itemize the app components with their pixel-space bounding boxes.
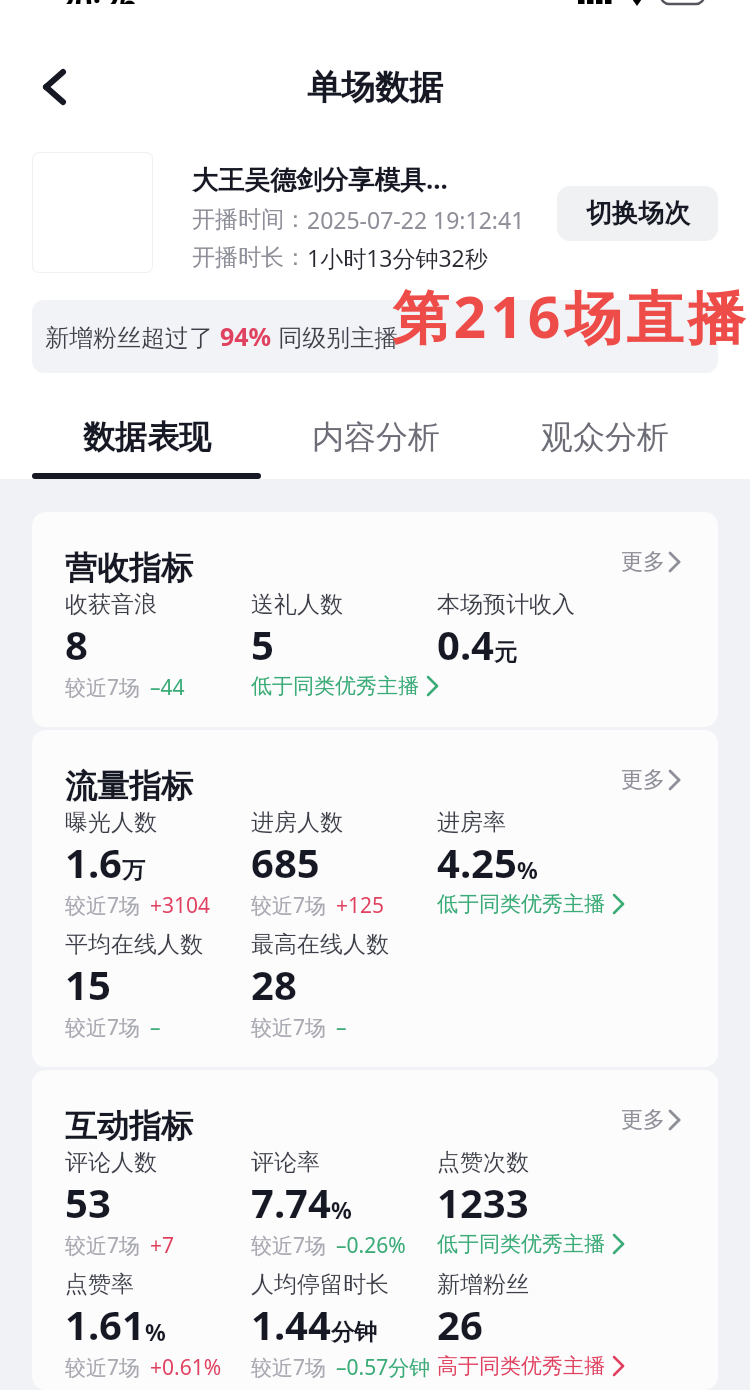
- button[interactable]: 数据表现: [32, 410, 261, 479]
- staticText: 切换场次: [586, 197, 690, 230]
- button[interactable]: Back: [18, 58, 76, 116]
- staticText: 1233: [437, 1175, 529, 1229]
- staticText: 万: [122, 856, 145, 885]
- staticText: +125: [336, 891, 385, 920]
- staticText: +0.61%: [150, 1353, 222, 1382]
- staticText: 8: [65, 617, 88, 671]
- staticText: 较近7场: [251, 891, 327, 920]
- staticText: 人均停留时长: [251, 1270, 389, 1299]
- staticText: 2025-07-22 19:12:41: [307, 204, 525, 235]
- staticText: 高于同类优秀主播: [437, 1353, 605, 1379]
- staticText: 开播时间：: [192, 205, 307, 234]
- staticText: 评论人数: [65, 1148, 157, 1177]
- staticText: 53: [65, 1175, 111, 1229]
- button[interactable]: 低于同类优秀主播: [251, 673, 437, 699]
- staticText: 进房人数: [251, 808, 343, 837]
- button[interactable]: 更多: [621, 766, 683, 794]
- staticText: –: [336, 1013, 347, 1042]
- staticText: 1.6: [65, 835, 122, 889]
- staticText: 较近7场: [65, 1013, 141, 1042]
- staticText: –44: [150, 673, 185, 702]
- staticText: 更多: [621, 548, 665, 576]
- staticText: 94%: [220, 319, 272, 353]
- staticText: 低于同类优秀主播: [251, 673, 419, 699]
- staticText: %: [145, 1316, 166, 1347]
- staticText: 0.4: [437, 617, 494, 671]
- staticText: %: [517, 854, 538, 885]
- staticText: 新增粉丝: [437, 1270, 529, 1299]
- staticText: 收获音浪: [65, 590, 157, 619]
- button[interactable]: 更多: [621, 1106, 683, 1134]
- staticText: 685: [251, 835, 320, 889]
- staticText: 进房率: [437, 808, 506, 837]
- staticText: 元: [494, 638, 517, 667]
- staticText: –0.26%: [336, 1231, 406, 1260]
- button[interactable]: 内容分析: [261, 410, 490, 479]
- staticText: 曝光人数: [65, 808, 157, 837]
- staticText: 较近7场: [251, 1353, 327, 1382]
- staticText: 内容分析: [312, 417, 440, 457]
- staticText: 较近7场: [251, 1013, 327, 1042]
- staticText: 互动指标: [65, 1106, 193, 1146]
- button[interactable]: 低于同类优秀主播: [437, 1231, 623, 1257]
- staticText: 开播时长：: [192, 243, 307, 272]
- staticText: %: [331, 1194, 352, 1225]
- button[interactable]: 高于同类优秀主播: [437, 1353, 623, 1379]
- staticText: 较近7场: [65, 1353, 141, 1382]
- staticText: 更多: [621, 766, 665, 794]
- staticText: 数据表现: [83, 417, 211, 457]
- staticText: –: [150, 1013, 161, 1042]
- staticText: 15: [65, 957, 111, 1011]
- staticText: 点赞率: [65, 1270, 134, 1299]
- staticText: 本场预计收入: [437, 590, 575, 619]
- staticText: +7: [150, 1231, 175, 1260]
- staticText: 26: [437, 1297, 483, 1351]
- button[interactable]: 观众分析: [490, 410, 719, 479]
- staticText: 送礼人数: [251, 590, 343, 619]
- staticText: 较近7场: [251, 1231, 327, 1260]
- staticText: 4.25: [437, 835, 517, 889]
- button[interactable]: 更多: [621, 548, 683, 576]
- staticText: 低于同类优秀主播: [437, 891, 605, 917]
- button[interactable]: 低于同类优秀主播: [437, 891, 623, 917]
- button[interactable]: 切换场次: [557, 186, 718, 241]
- staticText: 营收指标: [65, 548, 193, 588]
- staticText: 大王吴德剑分享模具...: [192, 161, 448, 197]
- staticText: 评论率: [251, 1148, 320, 1177]
- staticText: 低于同类优秀主播: [437, 1231, 605, 1257]
- staticText: 更多: [621, 1106, 665, 1134]
- staticText: 单场数据: [307, 66, 443, 109]
- staticText: 平均在线人数: [65, 930, 203, 959]
- staticText: 1小时13分钟32秒: [307, 242, 488, 273]
- staticText: 最高在线人数: [251, 930, 389, 959]
- staticText: 1.61: [65, 1297, 145, 1351]
- staticText: 第216场直播: [392, 277, 750, 355]
- staticText: 新增粉丝超过了: [45, 320, 220, 353]
- staticText: 5: [251, 617, 274, 671]
- staticText: 同级别主播: [272, 320, 399, 353]
- staticText: 28: [251, 957, 297, 1011]
- staticText: 观众分析: [541, 417, 669, 457]
- staticText: 分钟: [331, 1318, 377, 1347]
- staticText: +3104: [150, 891, 211, 920]
- staticText: 流量指标: [65, 766, 193, 806]
- staticText: 较近7场: [65, 891, 141, 920]
- staticText: 点赞次数: [437, 1148, 529, 1177]
- staticText: 较近7场: [65, 1231, 141, 1260]
- staticText: 20:26: [57, 0, 137, 4]
- staticText: 较近7场: [65, 673, 141, 702]
- staticText: 7.74: [251, 1175, 331, 1229]
- staticText: –0.57分钟: [336, 1353, 431, 1382]
- staticText: 1.44: [251, 1297, 331, 1351]
